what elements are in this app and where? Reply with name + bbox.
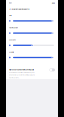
staticText: Vibrate around the incoming calls (9, 68, 34, 71)
staticText: ‹ (9, 7, 10, 11)
staticText: Media (9, 51, 14, 53)
staticText: Vibration Intensity (11, 8, 29, 10)
staticText: notifications. (9, 77, 19, 79)
button[interactable]: Vibrate around the incoming calls (49, 68, 55, 71)
staticText: phone vibrates for incoming calls and (9, 74, 35, 76)
staticText: ▮ ▮ ▮ (52, 2, 55, 4)
button[interactable]: Back (8, 6, 11, 11)
staticText: 9:41 (9, 2, 12, 4)
staticText: Call (9, 14, 11, 17)
staticText: Notification (9, 26, 18, 29)
staticText: Even when the silent mode is on, your (9, 71, 35, 73)
staticText: System (9, 39, 16, 41)
